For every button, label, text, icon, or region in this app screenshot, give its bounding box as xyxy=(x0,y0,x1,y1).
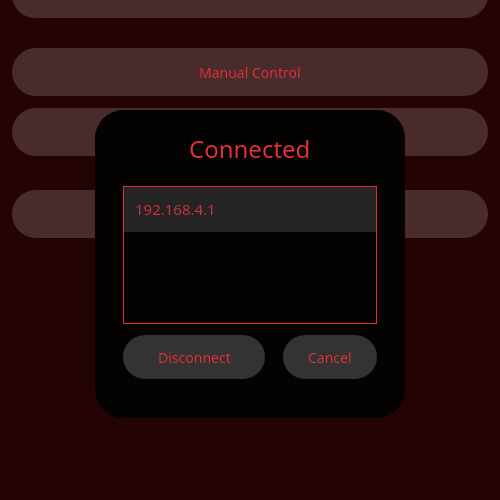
button[interactable] xyxy=(12,108,488,156)
staticText: Connected xyxy=(189,132,311,165)
button[interactable]: Disconnect xyxy=(123,335,265,379)
button[interactable]: Manual Control xyxy=(12,48,488,96)
button[interactable]: 192.168.4.1 xyxy=(123,186,377,324)
button[interactable] xyxy=(12,190,488,238)
button[interactable]: Cancel xyxy=(283,335,377,379)
button[interactable] xyxy=(12,0,488,18)
staticText: Cancel xyxy=(308,348,352,367)
staticText: Disconnect xyxy=(158,348,231,367)
staticText: 192.168.4.1 xyxy=(135,199,216,219)
staticText: Manual Control xyxy=(199,63,301,82)
